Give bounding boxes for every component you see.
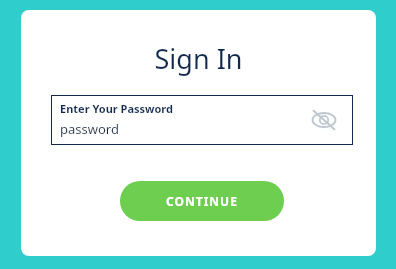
staticText: Sign In <box>21 40 376 77</box>
button[interactable]: Enter Your Password <box>51 95 353 145</box>
button[interactable]: Hide password <box>309 105 339 135</box>
staticText: password <box>60 120 119 138</box>
button[interactable]: CONTINUE <box>120 181 284 221</box>
staticText: CONTINUE <box>166 193 238 209</box>
staticText: Enter Your Password <box>60 101 173 116</box>
